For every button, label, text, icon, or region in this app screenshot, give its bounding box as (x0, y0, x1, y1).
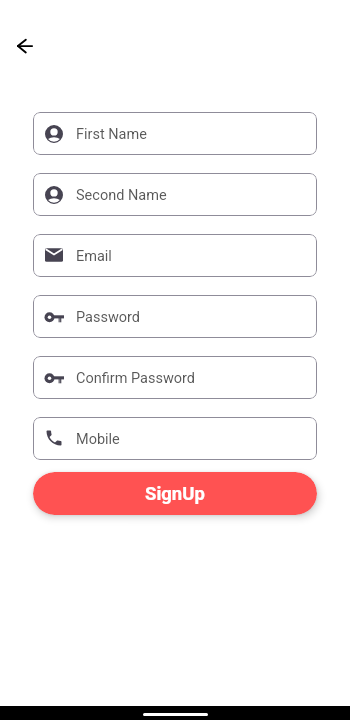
button[interactable]: Back (4, 22, 52, 70)
button[interactable]: First Name (33, 112, 317, 155)
button[interactable]: Second Name (33, 173, 317, 216)
staticText: Email (76, 248, 112, 265)
button[interactable]: Password (33, 295, 317, 338)
button[interactable]: Confirm Password (33, 356, 317, 399)
button[interactable]: Email (33, 234, 317, 277)
staticText: Confirm Password (76, 370, 196, 387)
staticText: First Name (76, 126, 147, 143)
staticText: Mobile (76, 431, 120, 448)
button[interactable]: Mobile (33, 417, 317, 460)
button[interactable]: SignUp (33, 472, 317, 515)
staticText: SignUp (145, 483, 205, 505)
staticText: Second Name (76, 187, 167, 204)
staticText: Password (76, 309, 141, 326)
